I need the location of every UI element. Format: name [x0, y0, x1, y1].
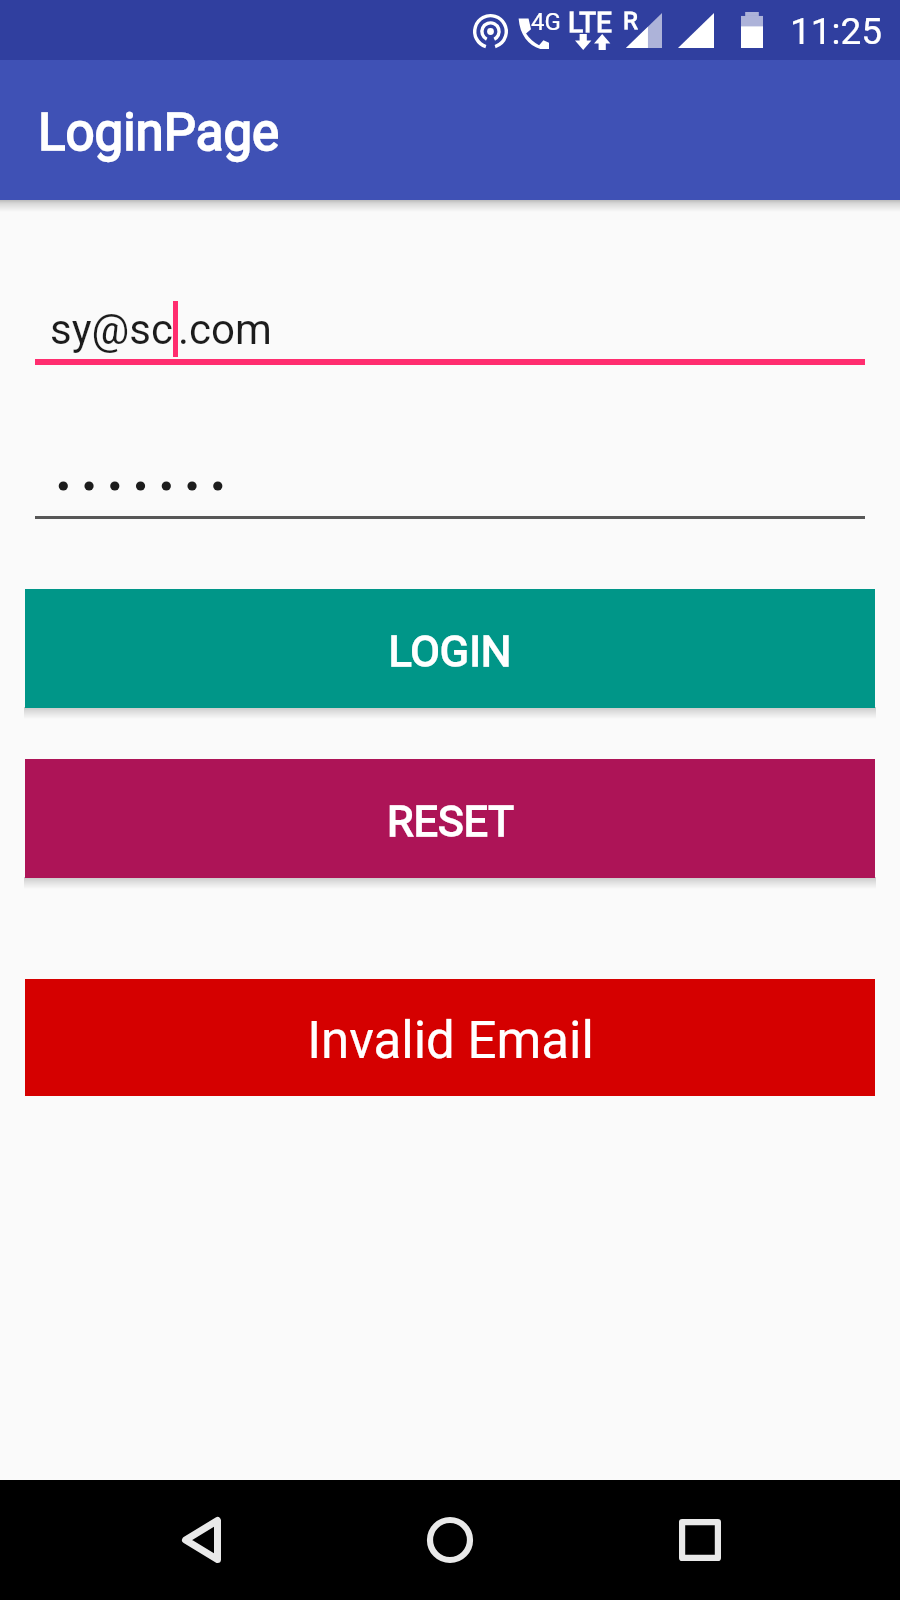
button[interactable]: Password field [35, 479, 865, 519]
staticText: LTE [568, 6, 612, 39]
staticText: .com [178, 305, 272, 354]
button[interactable]: LOGIN [25, 589, 875, 708]
staticText: 4G [531, 8, 561, 36]
button[interactable]: Home [390, 1480, 510, 1600]
staticText: sy@sc [50, 305, 173, 354]
staticText: Invalid Email [307, 1011, 594, 1071]
staticText: RESET [387, 796, 514, 846]
staticText: 11:25 [790, 10, 883, 53]
button[interactable]: Invalid Email [25, 979, 875, 1096]
button[interactable]: RESET [25, 759, 875, 878]
button[interactable]: Email address field [35, 300, 865, 365]
button[interactable]: Recents [640, 1480, 760, 1600]
staticText: LoginPage [38, 103, 280, 163]
staticText: R [623, 7, 638, 35]
staticText: LOGIN [388, 626, 512, 676]
button[interactable]: Back [140, 1480, 260, 1600]
